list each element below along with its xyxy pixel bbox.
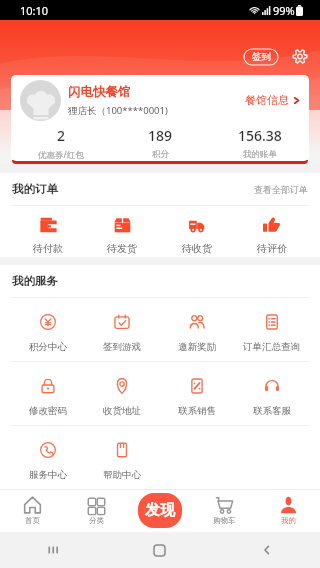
button[interactable]: 待评价 [234, 206, 309, 257]
button[interactable]: 查看全部订单 [254, 184, 308, 195]
staticText: 99% [273, 3, 295, 18]
staticText: 优惠券/红包 [38, 149, 84, 161]
staticText: 帮助中心 [103, 469, 141, 481]
button[interactable]: 2 [11, 125, 111, 161]
staticText: 收货地址 [103, 405, 141, 417]
button[interactable]: 收货地址 [85, 362, 159, 425]
staticText: 我的服务 [12, 274, 58, 288]
button[interactable]: 购物车 [192, 489, 256, 532]
button[interactable]: 首页 [0, 489, 64, 532]
staticText: 购物车 [213, 516, 236, 525]
staticText: 积分 [152, 149, 169, 160]
staticText: 查看全部订单 [254, 184, 308, 195]
button[interactable]: 分类 [64, 489, 128, 532]
staticText: 闪电快餐馆 [68, 84, 131, 100]
button[interactable]: 积分中心 [11, 298, 85, 361]
button[interactable]: 签到 [244, 49, 278, 65]
button[interactable]: 待收货 [159, 206, 234, 257]
staticText: 我的 [281, 516, 296, 525]
button[interactable]: 修改密码 [11, 362, 85, 425]
staticText: 联系销售 [178, 405, 216, 417]
staticText: 待收货 [182, 242, 212, 255]
button[interactable]: 发现 [138, 493, 182, 528]
staticText: 156.38 [238, 126, 282, 145]
staticText: 联系客服 [253, 405, 291, 417]
button[interactable]: 邀新奖励 [159, 298, 234, 361]
staticText: 10:10 [20, 3, 49, 18]
staticText: 待付款 [33, 242, 63, 255]
staticText: 修改密码 [29, 405, 67, 417]
staticText: 我的账单 [243, 149, 277, 160]
staticText: 分类 [89, 516, 104, 525]
staticText: 发现 [145, 501, 175, 520]
staticText: 餐馆信息 [245, 93, 289, 107]
button[interactable]: Settings [290, 46, 310, 66]
staticText: 服务中心 [29, 469, 67, 481]
staticText: 189 [148, 126, 173, 145]
button[interactable]: 帮助中心 [85, 426, 159, 489]
button[interactable]: 待发货 [85, 206, 159, 257]
staticText: 首页 [25, 516, 40, 525]
staticText: 待评价 [257, 242, 287, 255]
staticText: 积分中心 [29, 341, 67, 353]
staticText: 签到游戏 [103, 341, 141, 353]
button[interactable]: 订单汇总查询 [234, 298, 309, 361]
button[interactable]: 联系客服 [234, 362, 309, 425]
staticText: 2 [57, 126, 66, 145]
button[interactable]: 我的 [256, 489, 320, 532]
staticText: 邀新奖励 [178, 341, 216, 353]
button[interactable]: 189 [111, 125, 210, 161]
staticText: 待发货 [107, 242, 137, 255]
button[interactable]: 餐馆信息 [245, 93, 301, 107]
staticText: 签到 [252, 51, 271, 63]
button[interactable]: 156.38 [210, 125, 309, 161]
staticText: 订单汇总查询 [243, 341, 300, 353]
button[interactable]: 待付款 [11, 206, 85, 257]
button[interactable]: 服务中心 [11, 426, 85, 489]
button[interactable]: 签到游戏 [85, 298, 159, 361]
button[interactable]: 联系销售 [159, 362, 234, 425]
staticText: 狸店长（100****0001) [68, 104, 168, 117]
staticText: 我的订单 [12, 182, 58, 196]
